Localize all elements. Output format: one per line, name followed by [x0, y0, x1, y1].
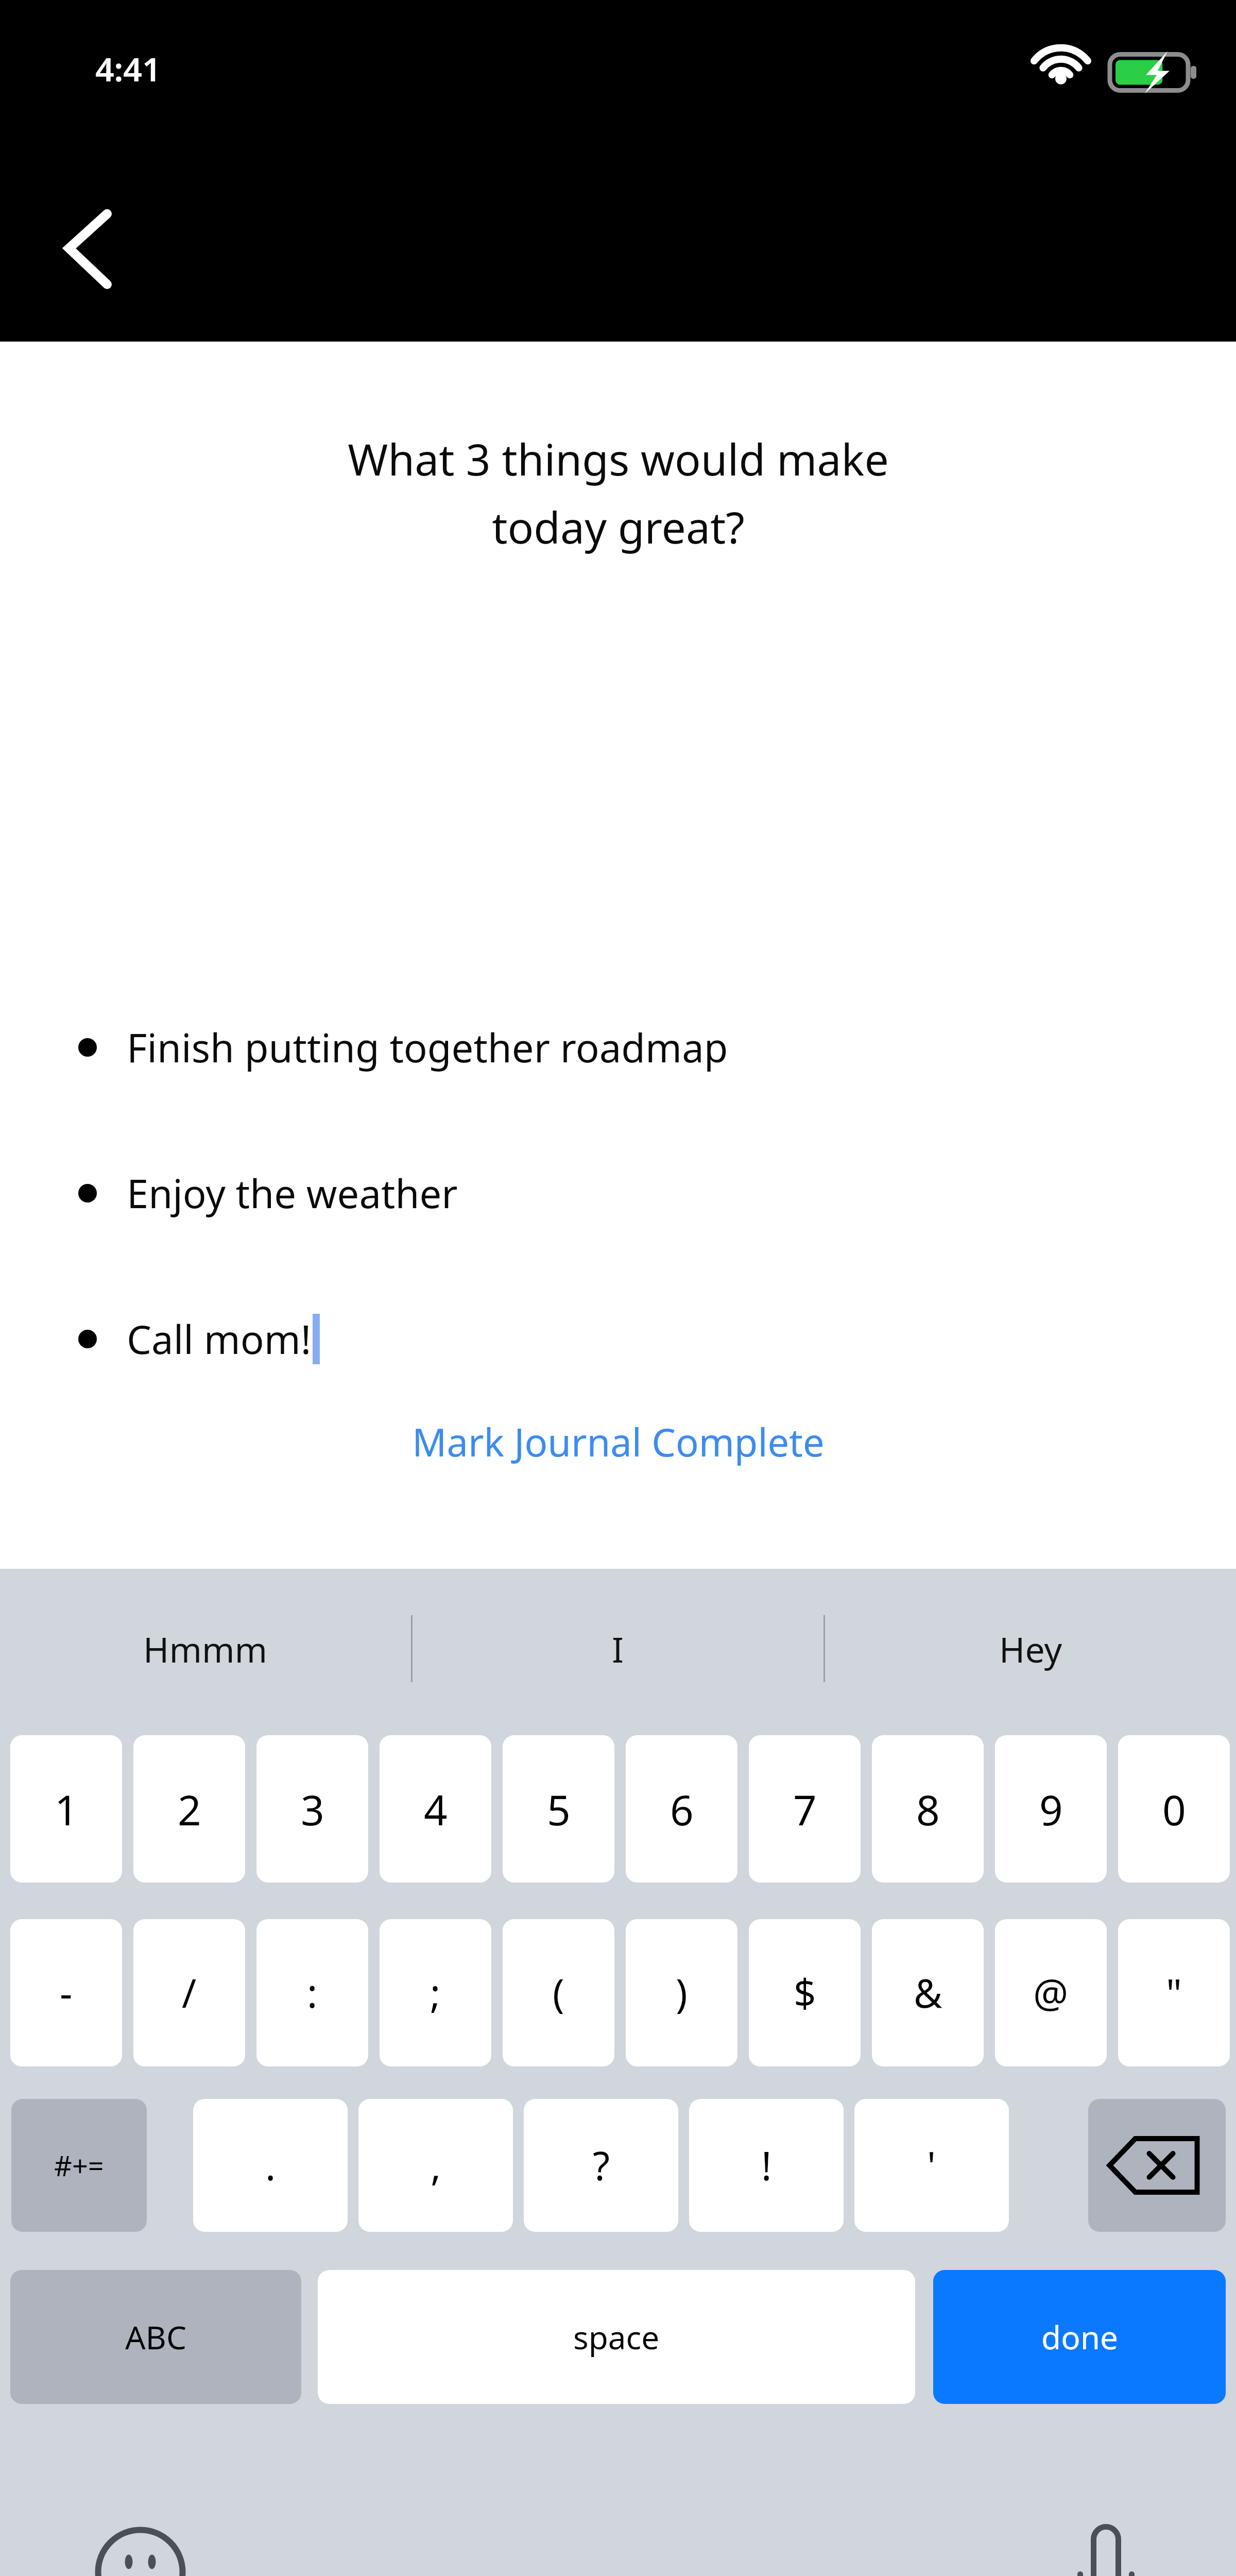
button[interactable]: '	[854, 2099, 1009, 2232]
staticText: 2	[178, 1781, 201, 1837]
staticText: #+=	[54, 2146, 104, 2184]
staticText: Hmmm	[143, 1625, 268, 1673]
button[interactable]: :	[256, 1919, 368, 2066]
staticText: I	[612, 1625, 624, 1673]
staticText: 6	[670, 1781, 694, 1837]
staticText: )	[676, 1966, 688, 2020]
button[interactable]: .	[193, 2099, 348, 2232]
button[interactable]: #+=	[11, 2099, 147, 2232]
button[interactable]: I	[413, 1569, 823, 1728]
staticText: .	[265, 2139, 276, 2192]
button[interactable]: ,	[358, 2099, 513, 2232]
button[interactable]: Call mom!	[0, 1303, 1236, 1375]
button[interactable]: 7	[749, 1735, 861, 1883]
staticText: 8	[916, 1781, 940, 1837]
staticText: '	[927, 2139, 936, 2192]
button[interactable]: space	[318, 2270, 915, 2404]
staticText: "	[1166, 1966, 1182, 2020]
staticText: ;	[430, 1966, 441, 2020]
staticText: ,	[431, 2139, 441, 2192]
staticText: !	[761, 2139, 772, 2192]
button[interactable]: Dictation	[1051, 2517, 1161, 2576]
staticText: What 3 things would make	[348, 429, 889, 488]
button[interactable]: Finish putting together roadmap	[0, 1011, 1236, 1083]
staticText: -	[60, 1966, 73, 2020]
button[interactable]: "	[1118, 1919, 1230, 2066]
button[interactable]: -	[10, 1919, 122, 2066]
button[interactable]: Enjoy the weather	[0, 1157, 1236, 1229]
button[interactable]: Mark Journal Complete	[247, 1403, 989, 1480]
button[interactable]: @	[995, 1919, 1107, 2066]
staticText: Finish putting together roadmap	[127, 1021, 728, 1074]
button[interactable]: 8	[872, 1735, 984, 1883]
staticText: &	[914, 1966, 942, 2020]
button[interactable]: Backspace	[1088, 2099, 1226, 2232]
button[interactable]: Emoji	[85, 2517, 196, 2576]
button[interactable]: 2	[133, 1735, 245, 1883]
staticText: Hey	[999, 1625, 1062, 1673]
button[interactable]: /	[133, 1919, 245, 2066]
button[interactable]: (	[503, 1919, 614, 2066]
staticText: space	[573, 2315, 660, 2359]
button[interactable]: 4	[380, 1735, 491, 1883]
staticText: /	[182, 1966, 197, 2020]
staticText: $	[794, 1966, 816, 2020]
staticText: Mark Journal Complete	[412, 1416, 825, 1468]
button[interactable]: )	[626, 1919, 737, 2066]
staticText: 4:41	[95, 46, 161, 91]
button[interactable]: &	[872, 1919, 984, 2066]
button[interactable]: Hey	[825, 1569, 1236, 1728]
button[interactable]: 0	[1118, 1735, 1230, 1883]
button[interactable]: !	[689, 2099, 844, 2232]
button[interactable]: 3	[256, 1735, 368, 1883]
staticText: 5	[547, 1781, 571, 1837]
staticText: done	[1041, 2315, 1118, 2359]
button[interactable]: 6	[626, 1735, 737, 1883]
staticText: @	[1033, 1966, 1069, 2020]
staticText: ABC	[125, 2315, 187, 2359]
button[interactable]: ;	[380, 1919, 491, 2066]
button[interactable]: Hmmm	[0, 1569, 411, 1728]
button[interactable]: ?	[524, 2099, 678, 2232]
staticText: 4	[424, 1781, 448, 1837]
button[interactable]: 1	[10, 1735, 122, 1883]
button[interactable]: 5	[503, 1735, 614, 1883]
button[interactable]: ABC	[10, 2270, 301, 2404]
staticText: today great?	[492, 497, 745, 556]
staticText: Enjoy the weather	[127, 1166, 458, 1220]
button[interactable]: $	[749, 1919, 861, 2066]
staticText: 1	[55, 1781, 78, 1837]
staticText: (	[553, 1966, 564, 2020]
staticText: ?	[593, 2139, 610, 2192]
staticText: 9	[1039, 1781, 1063, 1837]
button[interactable]: 9	[995, 1735, 1107, 1883]
staticText: Call mom!	[127, 1312, 312, 1366]
button[interactable]: Back	[15, 170, 170, 325]
staticText: 0	[1162, 1781, 1186, 1837]
staticText: 3	[301, 1781, 324, 1837]
staticText: 7	[793, 1781, 817, 1837]
button[interactable]: done	[933, 2270, 1226, 2404]
staticText: :	[307, 1966, 318, 2020]
